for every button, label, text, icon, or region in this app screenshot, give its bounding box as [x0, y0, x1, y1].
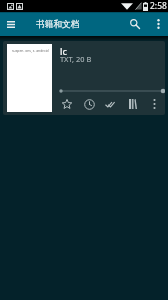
button[interactable]: Reading history	[78, 94, 100, 114]
button[interactable]: More options	[148, 14, 168, 34]
button[interactable]: suspen. ons, s. android	[3, 41, 165, 115]
staticText: 书籍和文档	[36, 19, 80, 30]
button[interactable]: Search	[125, 14, 145, 34]
button[interactable]: Navigation menu	[3, 16, 19, 32]
button[interactable]: Library	[122, 94, 144, 114]
staticText: TXT, 20 B	[60, 54, 92, 64]
staticText: suspen. ons, s. android	[12, 48, 49, 53]
button[interactable]: Mark as read	[100, 94, 122, 114]
button[interactable]: Favorite	[56, 94, 78, 114]
button[interactable]: More options	[144, 94, 164, 114]
staticText: lc	[60, 45, 67, 57]
staticText: 2:58	[150, 0, 167, 12]
